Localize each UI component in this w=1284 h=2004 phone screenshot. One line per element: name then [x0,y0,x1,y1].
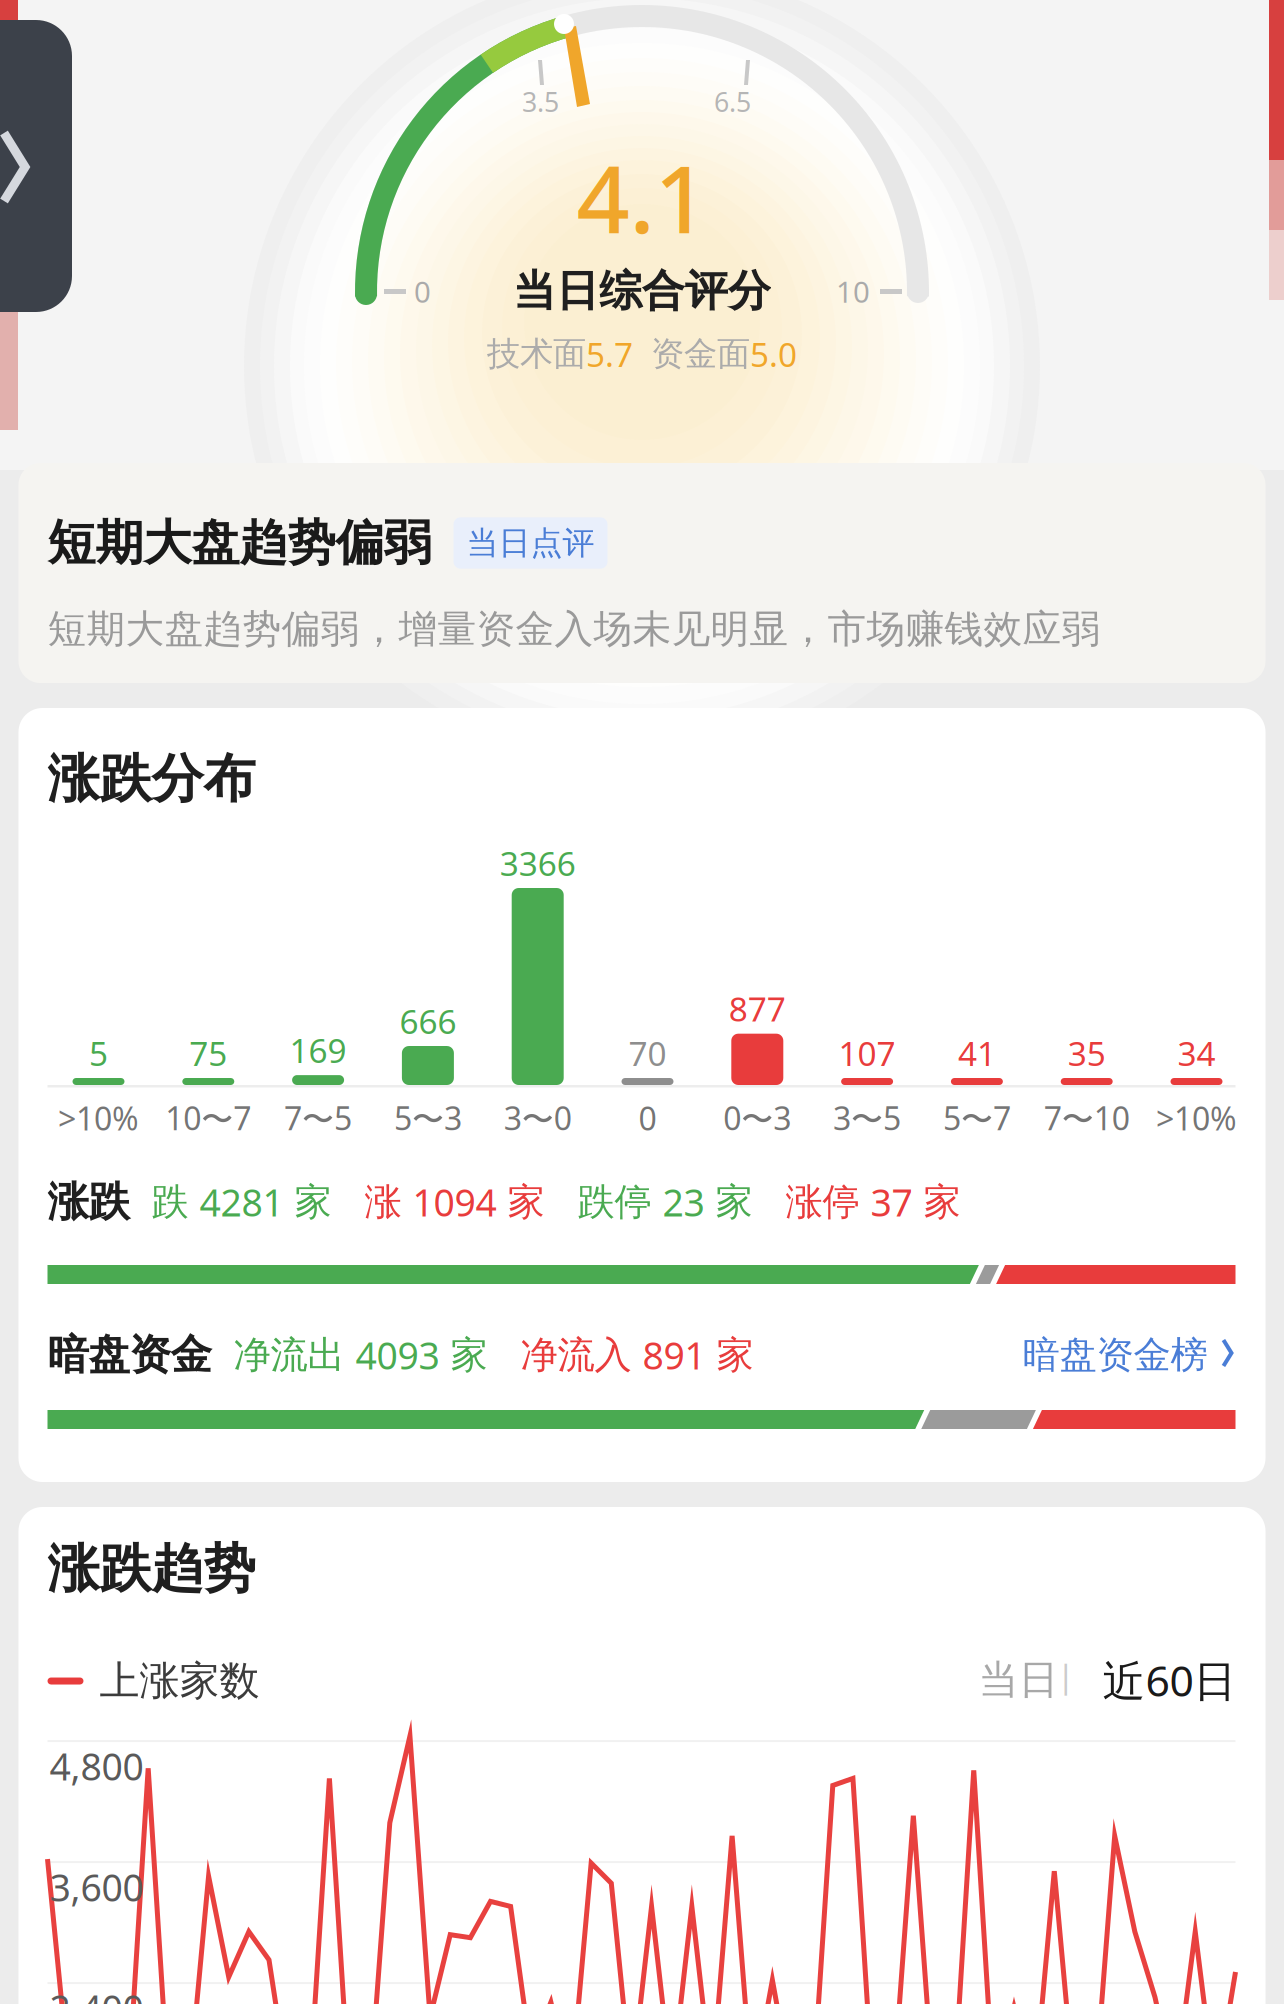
staticText: 资金面 [651,333,750,374]
staticText: ⎸ [1064,1664,1096,1696]
button[interactable]: 暗盘资金榜 [965,1325,1235,1385]
staticText: 3366 [500,841,576,885]
staticText: 4281 [199,1177,283,1227]
staticText: >10% [1156,1097,1237,1139]
staticText: 169 [290,1028,347,1072]
staticText: 1094 [412,1177,496,1227]
staticText: 技术面 [487,333,586,374]
staticText: 4,800 [49,1741,143,1791]
staticText: 净流入 [487,1332,642,1378]
staticText: 5.7 [586,332,633,376]
staticText: 3〜0 [504,1097,572,1139]
staticText: 涨跌趋势 [47,1537,255,1601]
staticText: >10% [58,1097,139,1139]
staticText: 净流出 [211,1332,355,1378]
staticText: 877 [729,986,786,1031]
staticText: 涨跌 [47,1177,129,1227]
staticText: 107 [839,1031,896,1075]
staticText: 0〜3 [723,1097,791,1139]
staticText: 家 [283,1179,331,1225]
staticText: 75 [189,1031,227,1075]
staticText: 5〜3 [394,1097,462,1139]
staticText: 70 [628,1031,666,1075]
staticText: 家 [496,1179,544,1225]
staticText: 当日点评 [466,523,594,563]
staticText: 暗盘资金榜 [1022,1332,1207,1378]
staticText: 891 [642,1330,705,1380]
staticText: 2,400 [49,1983,143,2004]
staticText: 涨 [331,1179,412,1225]
staticText: 5 [89,1031,108,1075]
staticText: 3.5 [522,84,559,119]
button[interactable]: 当日 [978,1655,1058,1704]
staticText: 家 [439,1332,487,1378]
staticText: 0 [414,272,431,311]
staticText: 涨停 [752,1179,870,1225]
staticText: 35 [1068,1031,1106,1075]
staticText: 短期大盘趋势偏弱 [47,513,431,572]
staticText: 7〜5 [284,1097,352,1139]
staticText: 当日 [978,1655,1058,1704]
staticText: 34 [1177,1031,1215,1075]
staticText: 5.0 [750,332,797,376]
staticText: 3〜5 [833,1097,901,1139]
button[interactable]: 展开 [0,20,72,312]
staticText: 上涨家数 [99,1656,259,1705]
staticText: 10 [836,272,870,311]
staticText: 23 [662,1177,704,1227]
staticText: 涨跌分布 [47,747,255,811]
staticText: 10〜7 [165,1097,251,1139]
staticText: 短期大盘趋势偏弱，增量资金入场未见明显，市场赚钱效应弱 [47,605,1100,653]
staticText: 家 [912,1179,960,1225]
staticText: 41 [958,1031,996,1075]
staticText: 666 [399,999,456,1043]
staticText: 7〜10 [1044,1097,1130,1139]
staticText: 5〜7 [943,1097,1011,1139]
staticText: 37 [870,1177,912,1227]
staticText: 暗盘资金 [47,1330,211,1380]
staticText: 跌停 [544,1179,662,1225]
staticText: 4.1 [576,135,707,259]
staticText: 0 [638,1097,656,1139]
staticText: 4093 [355,1330,439,1380]
button[interactable]: 近60日 [1102,1652,1236,1708]
staticText: 6.5 [714,84,751,119]
staticText: 3,600 [49,1862,143,1912]
staticText: 当日综合评分 [513,265,771,317]
staticText: 家 [705,1332,753,1378]
staticText: 家 [704,1179,752,1225]
staticText: 近60日 [1102,1652,1236,1708]
staticText: 跌 [129,1179,199,1225]
